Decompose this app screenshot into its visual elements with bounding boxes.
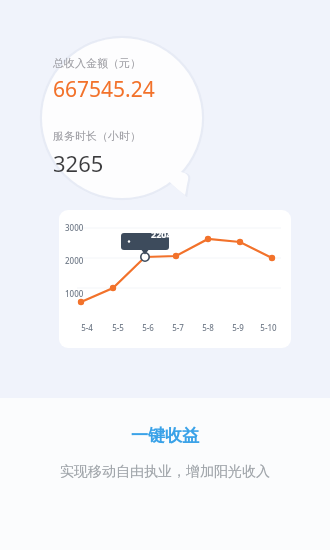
staticText: 5-8 — [202, 322, 214, 333]
button[interactable]: 2204 — [59, 210, 291, 348]
staticText: 5-9 — [232, 322, 244, 333]
staticText: 5-4 — [81, 322, 93, 333]
staticText: 一键收益 — [131, 425, 199, 446]
staticText: 5-7 — [172, 322, 184, 333]
staticText: 5-10 — [260, 322, 277, 333]
staticText: 1000 — [65, 288, 84, 299]
staticText: 5-5 — [112, 322, 124, 333]
staticText: 3265 — [53, 148, 104, 178]
staticText: 总收入金额（元） — [53, 56, 141, 70]
staticText: 2000 — [65, 255, 84, 266]
staticText: 2204 — [151, 228, 172, 240]
staticText: 实现移动自由执业，增加阳光收入 — [60, 463, 270, 481]
button[interactable]: 一键收益 — [0, 425, 330, 481]
staticText: 3000 — [65, 222, 84, 233]
staticText: 5-6 — [142, 322, 154, 333]
staticText: 667545.24 — [53, 75, 155, 104]
staticText: 服务时长（小时） — [53, 129, 141, 143]
